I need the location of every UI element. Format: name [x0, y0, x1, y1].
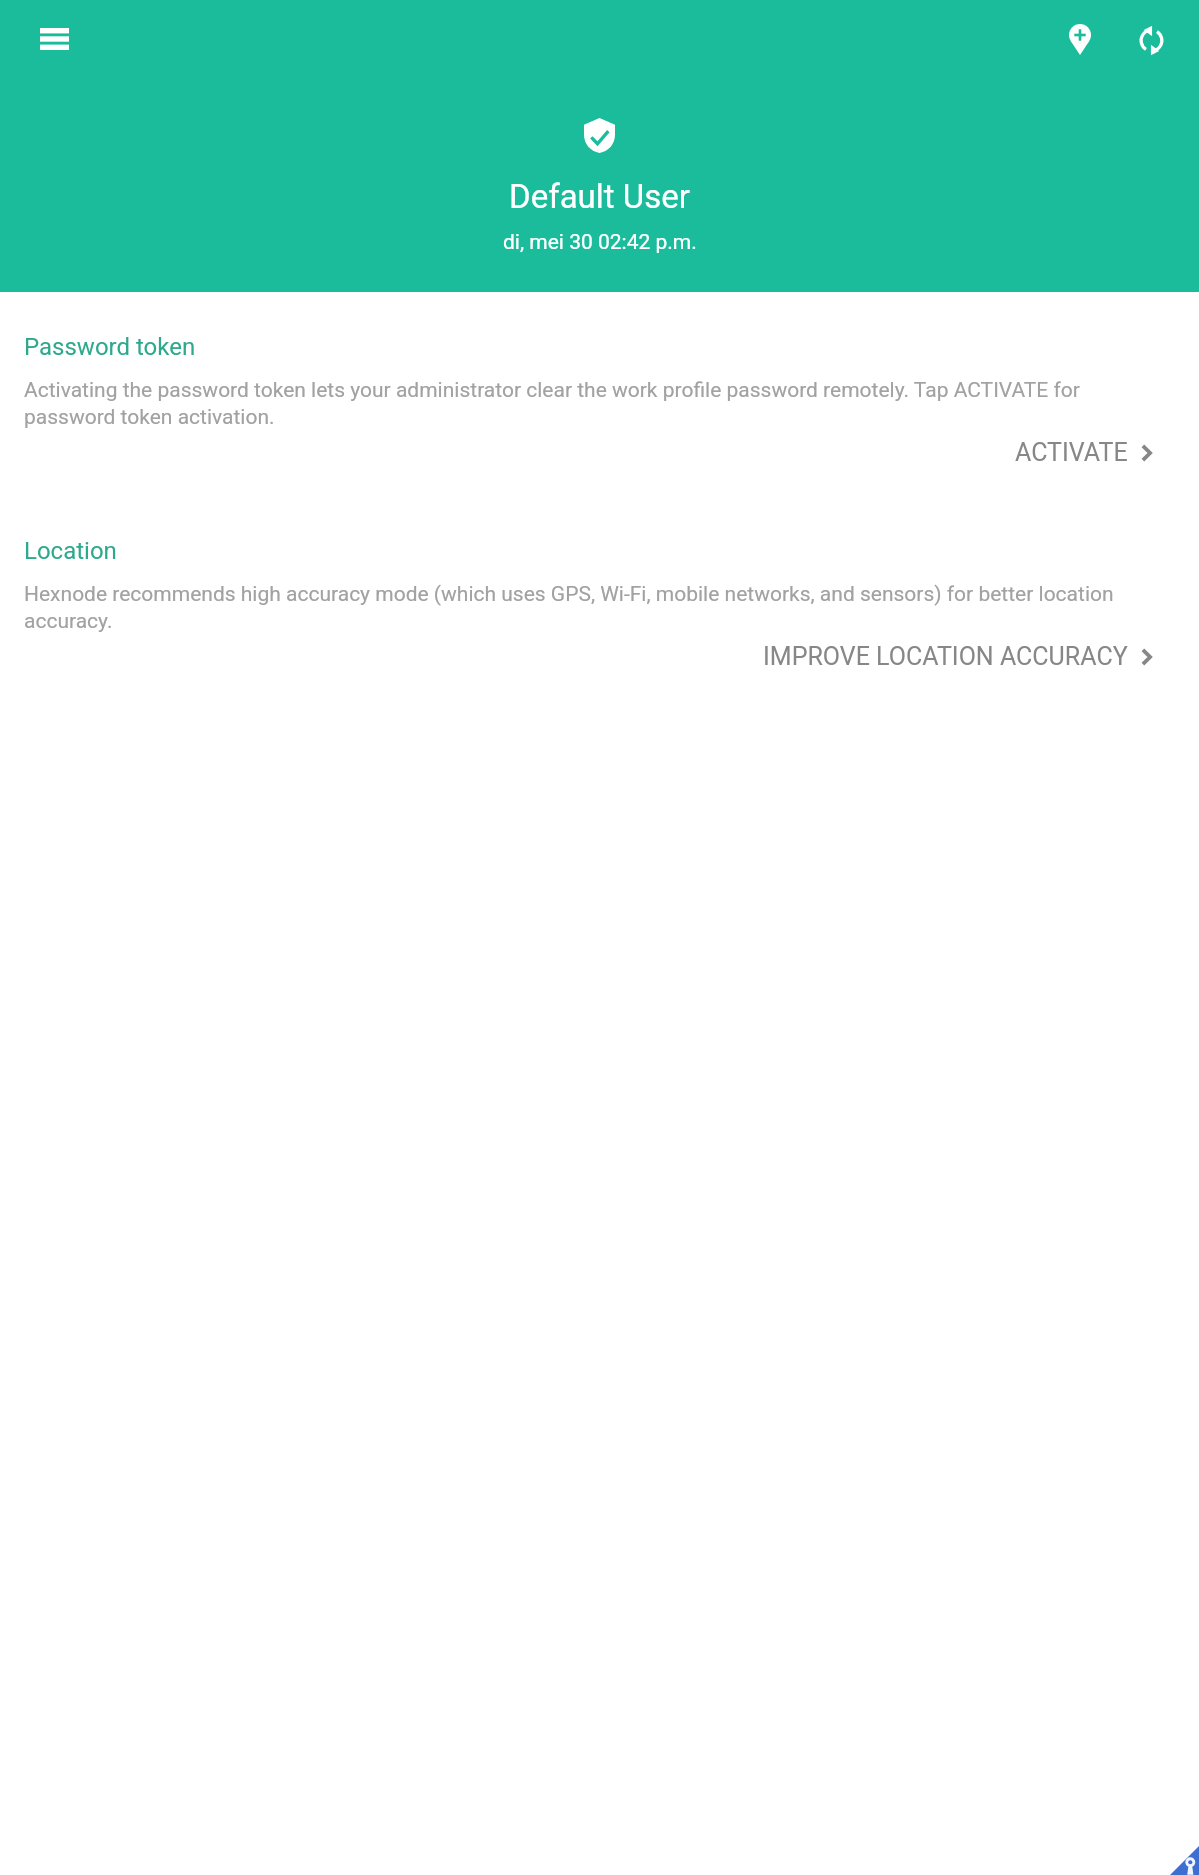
- staticText: Location: [24, 537, 117, 565]
- button[interactable]: Add location: [1038, 0, 1122, 78]
- button[interactable]: Sync: [1109, 1, 1193, 79]
- button[interactable]: ACTIVATE: [24, 438, 1152, 467]
- staticText: di, mei 30 02:42 p.m.: [503, 230, 697, 255]
- staticText: IMPROVE LOCATION ACCURACY: [763, 642, 1128, 671]
- button[interactable]: IMPROVE LOCATION ACCURACY: [24, 642, 1152, 671]
- staticText: Activating the password token lets your …: [24, 378, 1175, 430]
- staticText: ACTIVATE: [1015, 438, 1128, 467]
- staticText: Password token: [24, 333, 196, 361]
- staticText: Default User: [509, 177, 690, 216]
- button[interactable]: Work profile badge: [1170, 1846, 1199, 1875]
- staticText: Hexnode recommends high accuracy mode (w…: [24, 582, 1175, 634]
- button[interactable]: Menu: [12, 0, 96, 78]
